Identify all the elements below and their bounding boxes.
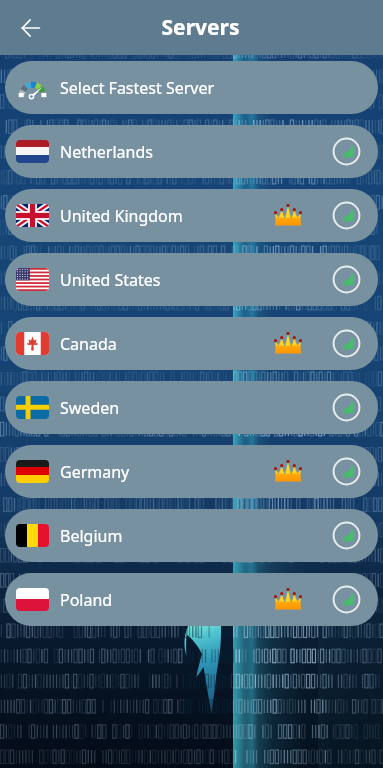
- button[interactable]: United States: [5, 253, 378, 306]
- staticText: Poland: [60, 589, 113, 611]
- button[interactable]: Germany: [5, 445, 378, 498]
- staticText: Sweden: [60, 397, 120, 419]
- button[interactable]: Belgium: [5, 509, 378, 562]
- staticText: United States: [60, 269, 161, 291]
- button[interactable]: Back: [14, 12, 46, 44]
- staticText: Select Fastest Server: [60, 77, 215, 99]
- button[interactable]: Netherlands: [5, 125, 378, 178]
- button[interactable]: Canada: [5, 317, 378, 370]
- staticText: Canada: [60, 333, 117, 355]
- button[interactable]: Select Fastest Server: [5, 61, 378, 114]
- staticText: Netherlands: [60, 141, 153, 163]
- button[interactable]: Poland: [5, 573, 378, 626]
- staticText: Belgium: [60, 525, 123, 547]
- staticText: Germany: [60, 461, 130, 483]
- button[interactable]: Sweden: [5, 381, 378, 434]
- staticText: United Kingdom: [60, 205, 183, 227]
- button[interactable]: United Kingdom: [5, 189, 378, 242]
- staticText: Servers: [18, 13, 383, 42]
